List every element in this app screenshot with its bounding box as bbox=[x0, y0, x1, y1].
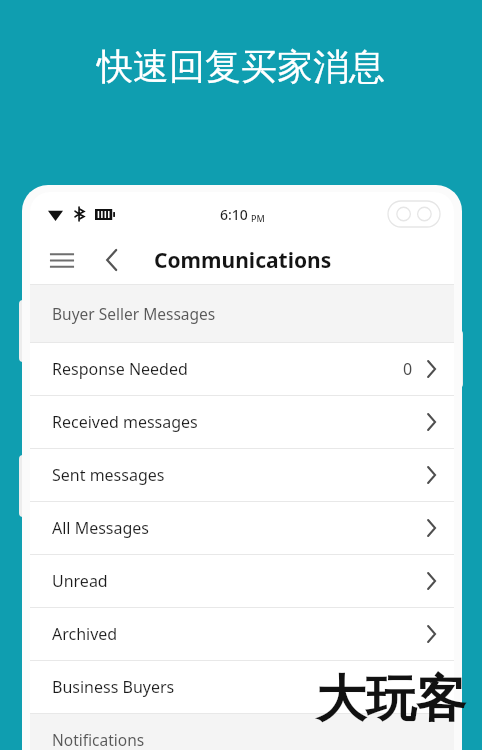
button[interactable]: Business Buyers bbox=[30, 660, 454, 713]
button[interactable]: Back bbox=[92, 240, 132, 280]
staticText: Archived bbox=[52, 623, 118, 645]
staticText: Notifications bbox=[52, 729, 145, 750]
staticText: PM bbox=[251, 212, 265, 224]
staticText: 快速回复买家消息 bbox=[97, 44, 385, 89]
staticText: 6:10 bbox=[220, 205, 248, 224]
staticText: Sent messages bbox=[52, 464, 165, 486]
button[interactable]: Menu bbox=[42, 240, 82, 280]
staticText: Buyer Seller Messages bbox=[52, 303, 216, 324]
button[interactable]: All Messages bbox=[30, 501, 454, 554]
staticText: All Messages bbox=[52, 517, 150, 539]
button[interactable]: Archived bbox=[30, 607, 454, 660]
staticText: Communications bbox=[154, 246, 332, 275]
staticText: Received messages bbox=[52, 411, 198, 433]
staticText: 大玩客 bbox=[316, 668, 466, 731]
staticText: Business Buyers bbox=[52, 676, 175, 698]
button[interactable]: Response Needed bbox=[30, 342, 454, 395]
staticText: Unread bbox=[52, 570, 108, 592]
button[interactable]: Sent messages bbox=[30, 448, 454, 501]
button[interactable]: Unread bbox=[30, 554, 454, 607]
staticText: 0 bbox=[403, 358, 413, 380]
staticText: Response Needed bbox=[52, 358, 188, 380]
button[interactable]: Received messages bbox=[30, 395, 454, 448]
